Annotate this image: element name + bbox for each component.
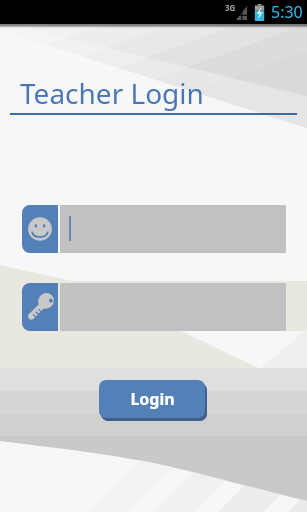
button[interactable]: Login xyxy=(99,380,205,418)
staticText: 5:30 xyxy=(271,1,303,23)
staticText: 3G xyxy=(225,2,236,13)
staticText: Teacher Login xyxy=(20,74,204,112)
button[interactable]: Username xyxy=(22,205,286,253)
button[interactable]: Password xyxy=(22,283,286,331)
staticText: Login xyxy=(130,388,175,410)
